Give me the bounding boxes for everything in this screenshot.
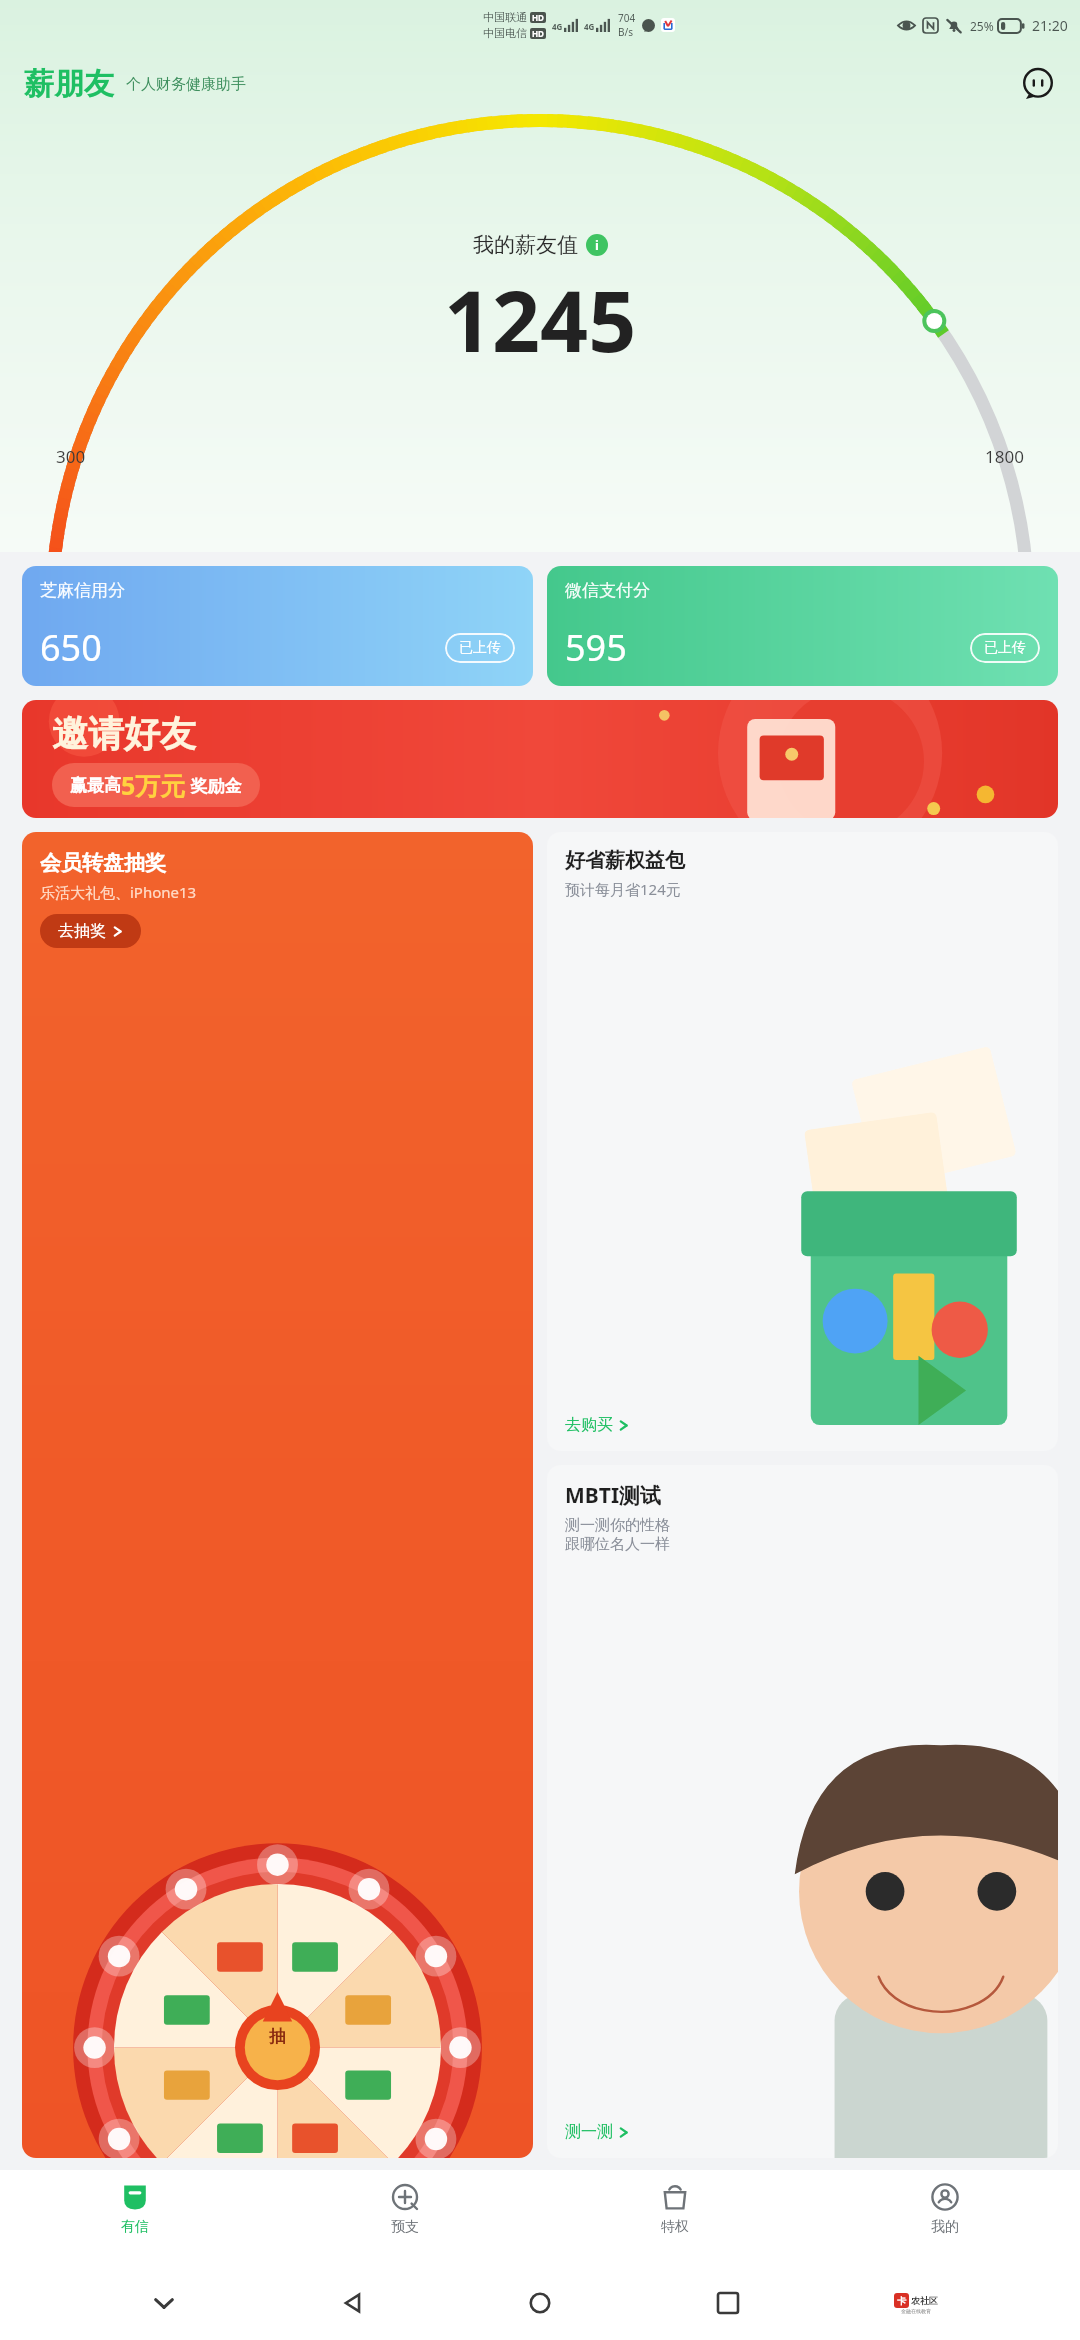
staticText: 300 — [56, 445, 86, 468]
button[interactable]: 特权 — [540, 2170, 810, 2266]
staticText: 农社区 — [911, 2295, 938, 2306]
staticText: 中国电信 — [483, 26, 527, 40]
button[interactable]: 主页 — [516, 2279, 564, 2327]
staticText: 5万元 — [121, 768, 186, 802]
staticText: 我的 — [931, 2218, 959, 2236]
button[interactable]: 芝麻信用分 — [22, 566, 533, 686]
staticText: 卡 — [897, 2295, 906, 2306]
button[interactable]: 说明 — [586, 234, 608, 256]
button[interactable]: 测一测 — [565, 2122, 629, 2142]
staticText: 去抽奖 — [58, 921, 106, 941]
button[interactable]: 有信 — [0, 2170, 270, 2266]
staticText: 4G — [584, 21, 595, 32]
staticText: 去购买 — [565, 1415, 613, 1435]
staticText: 赢最高 — [70, 775, 121, 796]
staticText: 金融在线教育 — [901, 2308, 931, 2314]
button[interactable]: 预支 — [270, 2170, 540, 2266]
button[interactable]: MBTI测试 — [547, 1465, 1058, 2158]
button[interactable]: 卡农社区 — [892, 2279, 940, 2327]
staticText: i — [595, 236, 599, 254]
staticText: 704 — [618, 11, 636, 25]
staticText: 21:20 — [1032, 16, 1068, 35]
staticText: 595 — [565, 623, 627, 672]
staticText: HD — [532, 12, 544, 23]
staticText: 邀请好友 — [52, 711, 196, 756]
staticText: 4G — [552, 21, 563, 32]
staticText: 1800 — [985, 445, 1024, 468]
staticText: 微信支付分 — [565, 580, 650, 601]
staticText: B/s — [618, 25, 634, 39]
button[interactable]: 抽 — [22, 832, 533, 2158]
staticText: 25% — [970, 18, 994, 34]
button[interactable]: 微信支付分 — [547, 566, 1058, 686]
staticText: 薪朋友 — [24, 65, 114, 103]
staticText: 会员转盘抽奖 — [40, 850, 166, 876]
staticText: 中国联通 — [483, 10, 527, 24]
staticText: 已上传 — [984, 639, 1026, 657]
button[interactable]: 去抽奖 — [40, 914, 141, 948]
button[interactable]: 下拉 — [140, 2279, 188, 2327]
staticText: 奖励金 — [186, 774, 242, 797]
button[interactable]: 去购买 — [565, 1415, 629, 1435]
button[interactable]: 返回 — [328, 2279, 376, 2327]
staticText: 好省薪权益包 — [565, 848, 685, 873]
staticText: 1245 — [444, 262, 637, 376]
staticText: 我的薪友值 — [473, 232, 578, 258]
staticText: HD — [532, 28, 544, 39]
staticText: 预支 — [391, 2218, 419, 2236]
button[interactable]: 我的 — [810, 2170, 1080, 2266]
button[interactable]: 最近任务 — [704, 2279, 752, 2327]
staticText: 跟哪位名人一样 — [565, 1535, 670, 1554]
staticText: 抽 — [269, 2026, 286, 2047]
staticText: 预计每月省124元 — [565, 879, 681, 899]
button[interactable]: 客服消息 — [1018, 64, 1058, 104]
staticText: 芝麻信用分 — [40, 580, 125, 601]
button[interactable]: 邀请好友 — [22, 700, 1058, 818]
button[interactable]: 好省薪权益包 — [547, 832, 1058, 1451]
staticText: 已上传 — [459, 639, 501, 657]
staticText: 个人财务健康助手 — [126, 75, 246, 94]
staticText: 测一测你的性格 — [565, 1516, 670, 1535]
staticText: 650 — [40, 623, 102, 672]
staticText: 测一测 — [565, 2122, 613, 2142]
staticText: 特权 — [661, 2218, 689, 2236]
staticText: MBTI测试 — [565, 1481, 662, 1510]
staticText: 乐活大礼包、iPhone13 — [40, 882, 197, 902]
staticText: 有信 — [121, 2218, 149, 2236]
